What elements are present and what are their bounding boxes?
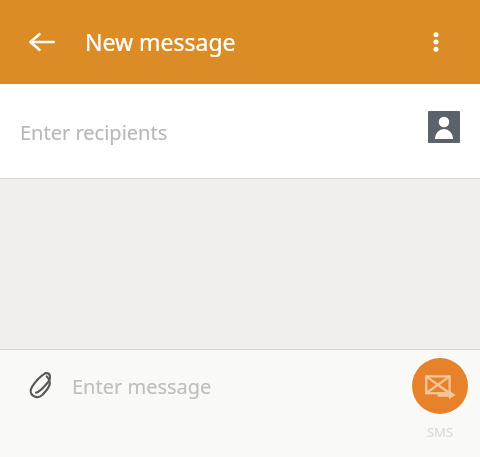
button[interactable] [0,84,480,178]
button[interactable]: Add contact [428,111,460,143]
button[interactable]: Enter message [72,362,392,410]
button[interactable]: Back [18,18,66,66]
staticText: Enter message [72,373,212,400]
staticText: Enter recipients [20,119,168,146]
button[interactable]: Attach [16,362,64,410]
staticText: New message [85,26,236,57]
button[interactable]: More options [412,18,460,66]
button[interactable]: Send message [412,358,468,414]
staticText: SMS [418,423,462,441]
